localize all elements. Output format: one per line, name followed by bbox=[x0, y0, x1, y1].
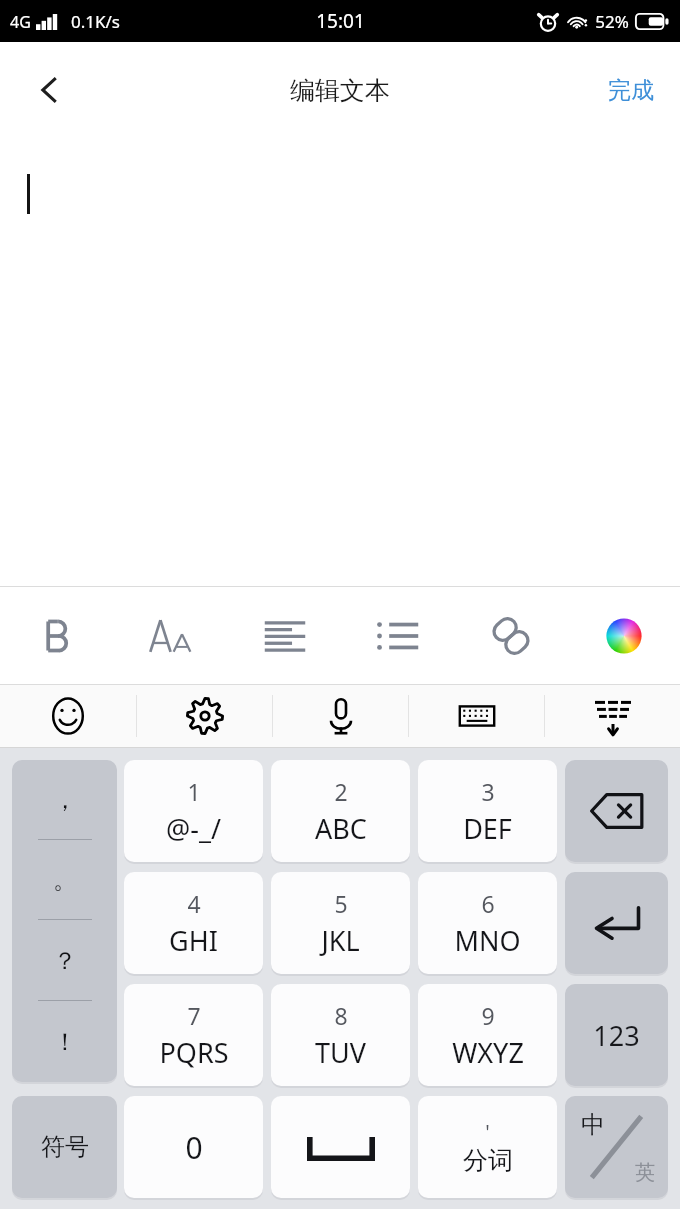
button[interactable]: 6 bbox=[418, 872, 557, 974]
button[interactable]: Emoji bbox=[0, 685, 136, 747]
staticText: JKL bbox=[321, 922, 360, 959]
button[interactable]: Voice input bbox=[273, 685, 408, 747]
staticText: 4G bbox=[10, 11, 31, 33]
staticText: 编辑文本 bbox=[290, 75, 390, 106]
staticText: 8 bbox=[334, 1000, 348, 1031]
staticText: 英 bbox=[635, 1160, 655, 1185]
staticText: 中 bbox=[581, 1110, 605, 1140]
staticText: 123 bbox=[593, 1017, 640, 1054]
staticText: ABC bbox=[315, 810, 367, 847]
staticText: 2 bbox=[334, 776, 348, 807]
staticText: @-_/ bbox=[166, 810, 221, 847]
staticText: 。 bbox=[53, 865, 77, 895]
button[interactable]: 3 bbox=[418, 760, 557, 862]
staticText: 4 bbox=[187, 888, 201, 919]
staticText: DEF bbox=[463, 810, 512, 847]
button[interactable]: 2 bbox=[271, 760, 410, 862]
staticText: ' bbox=[485, 1118, 490, 1145]
button[interactable]: Text colour bbox=[567, 587, 680, 684]
button[interactable]: Insert link bbox=[454, 587, 567, 684]
staticText: 7 bbox=[187, 1000, 201, 1031]
staticText: MNO bbox=[454, 922, 521, 959]
staticText: 3 bbox=[481, 776, 495, 807]
button[interactable]: 0 bbox=[124, 1096, 263, 1198]
button[interactable]: 9 bbox=[418, 984, 557, 1086]
button[interactable]: ' bbox=[418, 1096, 557, 1198]
staticText: 15:01 bbox=[316, 8, 365, 34]
button[interactable]: Settings bbox=[137, 685, 272, 747]
button[interactable] bbox=[0, 138, 680, 586]
button[interactable]: Bold bbox=[0, 587, 114, 684]
staticText: 52% bbox=[595, 10, 629, 33]
staticText: GHI bbox=[169, 922, 218, 959]
button[interactable]: Bullet list bbox=[341, 587, 454, 684]
button[interactable]: 123 bbox=[565, 984, 668, 1086]
button[interactable]: 1 bbox=[124, 760, 263, 862]
staticText: 5 bbox=[334, 888, 348, 919]
button[interactable]: 8 bbox=[271, 984, 410, 1086]
button[interactable]: Backspace bbox=[565, 760, 668, 862]
staticText: TUV bbox=[315, 1034, 366, 1071]
staticText: 分词 bbox=[463, 1145, 513, 1176]
staticText: ？ bbox=[53, 946, 77, 976]
button[interactable]: Space bbox=[271, 1096, 410, 1198]
button[interactable]: 7 bbox=[124, 984, 263, 1086]
button[interactable]: Enter bbox=[565, 872, 668, 974]
staticText: 0 bbox=[185, 1127, 203, 1168]
button[interactable]: 符号 bbox=[12, 1096, 117, 1198]
staticText: PQRS bbox=[159, 1034, 229, 1071]
button[interactable]: Punctuation bbox=[12, 760, 117, 1082]
button[interactable]: Hide keyboard bbox=[545, 685, 680, 747]
button[interactable]: 5 bbox=[271, 872, 410, 974]
staticText: 符号 bbox=[41, 1132, 89, 1162]
staticText: 9 bbox=[481, 1000, 495, 1031]
button[interactable]: Switch Chinese English bbox=[565, 1096, 668, 1198]
staticText: 1 bbox=[187, 776, 201, 807]
staticText: ！ bbox=[53, 1027, 77, 1057]
button[interactable]: 4 bbox=[124, 872, 263, 974]
button[interactable]: Font size bbox=[114, 587, 228, 684]
button[interactable]: Back bbox=[0, 42, 100, 138]
staticText: WXYZ bbox=[452, 1034, 524, 1071]
staticText: 6 bbox=[481, 888, 495, 919]
staticText: ， bbox=[53, 785, 77, 815]
button[interactable]: Align left bbox=[228, 587, 341, 684]
staticText: 0.1K/s bbox=[71, 10, 120, 33]
button[interactable]: Keyboard layout bbox=[409, 685, 544, 747]
button[interactable]: 完成 bbox=[582, 42, 680, 138]
staticText: 完成 bbox=[608, 76, 654, 105]
